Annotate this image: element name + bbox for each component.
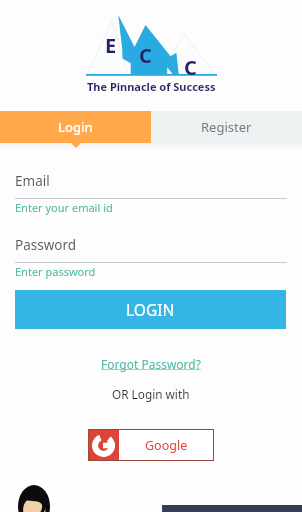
staticText: Login (58, 118, 93, 136)
other: Google (92, 434, 115, 457)
staticText: E (105, 32, 117, 59)
staticText: C (139, 42, 152, 69)
button[interactable]: LOGIN (15, 290, 286, 329)
staticText: The Pinnacle of Success (87, 79, 216, 94)
staticText: Register (201, 118, 252, 136)
staticText: C (184, 54, 197, 81)
staticText: Google (145, 437, 188, 454)
staticText: Password (15, 236, 77, 254)
staticText: LOGIN (126, 299, 175, 320)
staticText: Enter your email id (15, 200, 113, 215)
button[interactable]: Forgot Password? (101, 356, 201, 372)
button[interactable]: Login (0, 111, 151, 143)
staticText: OR Login with (112, 386, 190, 402)
button[interactable]: Google (88, 429, 214, 461)
staticText: Enter password (15, 264, 96, 279)
staticText: Email (15, 172, 50, 190)
button[interactable]: Register (151, 111, 302, 143)
